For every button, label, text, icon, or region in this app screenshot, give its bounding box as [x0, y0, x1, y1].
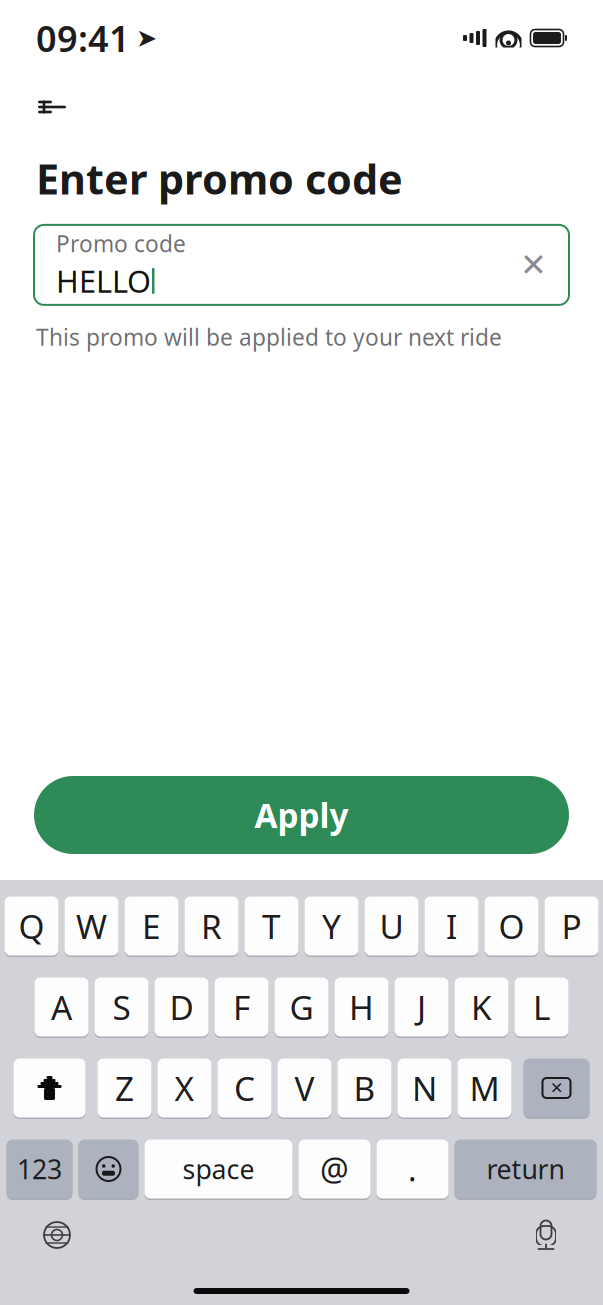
staticText: N: [412, 1066, 437, 1110]
button[interactable]: N: [397, 1057, 451, 1119]
staticText: return: [486, 1151, 564, 1187]
button[interactable]: Dictation: [523, 1212, 569, 1258]
staticText: F: [233, 985, 250, 1029]
staticText: D: [169, 985, 193, 1029]
button[interactable]: V: [277, 1057, 331, 1119]
staticText: O: [498, 904, 524, 948]
button[interactable]: G: [274, 976, 328, 1038]
staticText: I: [446, 904, 457, 948]
staticText: H: [349, 985, 374, 1029]
button[interactable]: R: [184, 895, 238, 957]
button[interactable]: L: [514, 976, 568, 1038]
button[interactable]: Promo code: [34, 225, 569, 305]
staticText: J: [417, 985, 426, 1029]
staticText: ➤: [136, 24, 157, 52]
staticText: Enter promo code: [36, 151, 403, 206]
staticText: ✕: [520, 247, 547, 283]
button[interactable]: At sign: [298, 1138, 370, 1200]
button[interactable]: C: [217, 1057, 271, 1119]
button[interactable]: Z: [97, 1057, 151, 1119]
button[interactable]: Apply: [34, 776, 569, 854]
staticText: M: [469, 1066, 499, 1110]
button[interactable]: M: [457, 1057, 511, 1119]
button[interactable]: I: [424, 895, 478, 957]
button[interactable]: W: [64, 895, 118, 957]
button[interactable]: A: [34, 976, 88, 1038]
staticText: T: [262, 904, 281, 948]
staticText: @: [320, 1148, 349, 1190]
staticText: Apply: [254, 793, 348, 837]
staticText: V: [294, 1066, 314, 1110]
button[interactable]: E: [124, 895, 178, 957]
staticText: Z: [115, 1066, 134, 1110]
staticText: S: [112, 985, 130, 1029]
button[interactable]: S: [94, 976, 148, 1038]
staticText: G: [289, 985, 313, 1029]
button[interactable]: Numbers: [6, 1138, 72, 1200]
button[interactable]: P: [544, 895, 598, 957]
staticText: ✕: [550, 1079, 563, 1097]
staticText: A: [51, 985, 72, 1029]
staticText: 09:41: [36, 14, 130, 62]
staticText: Promo code: [56, 228, 186, 259]
staticText: U: [379, 904, 403, 948]
button[interactable]: Next keyboard: [34, 1212, 80, 1258]
button[interactable]: Q: [4, 895, 58, 957]
staticText: E: [142, 904, 161, 948]
button[interactable]: K: [454, 976, 508, 1038]
button[interactable]: Y: [304, 895, 358, 957]
button[interactable]: return: [454, 1138, 596, 1200]
staticText: W: [76, 904, 107, 948]
button[interactable]: space: [144, 1138, 292, 1200]
staticText: R: [201, 904, 222, 948]
staticText: C: [234, 1066, 255, 1110]
staticText: L: [533, 985, 550, 1029]
button[interactable]: Shift: [13, 1057, 85, 1119]
staticText: Q: [18, 904, 44, 948]
button[interactable]: B: [337, 1057, 391, 1119]
staticText: This promo will be applied to your next …: [36, 322, 502, 352]
button[interactable]: Emoji: [78, 1138, 138, 1200]
staticText: .: [408, 1148, 417, 1190]
staticText: 123: [17, 1151, 62, 1187]
button[interactable]: O: [484, 895, 538, 957]
button[interactable]: T: [244, 895, 298, 957]
button[interactable]: Period: [376, 1138, 448, 1200]
button[interactable]: D: [154, 976, 208, 1038]
button[interactable]: U: [364, 895, 418, 957]
button[interactable]: Back: [30, 85, 74, 129]
staticText: P: [561, 904, 581, 948]
staticText: B: [353, 1066, 375, 1110]
staticText: space: [182, 1151, 254, 1187]
button[interactable]: J: [394, 976, 448, 1038]
button[interactable]: X: [157, 1057, 211, 1119]
staticText: HELLO: [56, 261, 151, 301]
button[interactable]: F: [214, 976, 268, 1038]
button[interactable]: Delete: [523, 1057, 589, 1119]
staticText: X: [174, 1066, 194, 1110]
staticText: Y: [322, 904, 341, 948]
button[interactable]: H: [334, 976, 388, 1038]
staticText: K: [471, 985, 492, 1029]
